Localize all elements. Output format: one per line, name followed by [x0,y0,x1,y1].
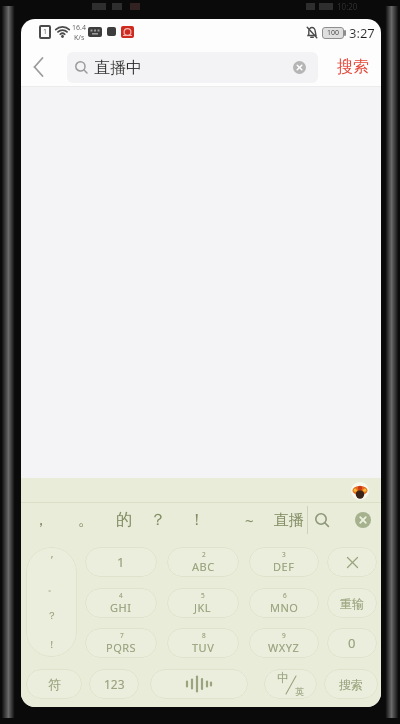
button[interactable] [327,547,377,577]
button[interactable]: 的 [108,508,140,532]
staticText: 直播中 [94,58,142,78]
staticText: 的 [116,510,132,530]
button[interactable]: 5 [167,588,239,618]
staticText: 直播 [274,511,304,530]
staticText: ？ [150,510,166,530]
staticText: 123 [104,676,125,692]
staticText: ！ [47,638,57,651]
staticText: 9 [282,631,286,640]
staticText: 英 [295,686,304,697]
staticText: 7 [120,631,124,640]
button[interactable] [311,509,333,531]
button[interactable]: 6 [249,588,319,618]
staticText: ’ [51,553,53,567]
button[interactable]: 3 [249,547,319,577]
button[interactable]: 搜索 [331,52,375,82]
button[interactable]: 直播中 [67,52,318,83]
button[interactable]: 符 [26,669,82,699]
staticText: 搜索 [337,57,369,77]
staticText: 2 [202,550,206,559]
staticText: 0 [348,634,356,652]
button[interactable]: 8 [167,628,239,658]
staticText: JKL [194,600,212,615]
button[interactable]: 中 [264,669,317,699]
staticText: TUV [192,640,215,655]
staticText: ABC [192,559,215,574]
button[interactable]: 1 [85,547,157,577]
staticText: 。 [78,510,94,530]
staticText: ， [33,510,49,530]
button[interactable] [150,669,248,699]
staticText: 3 [282,550,286,559]
button[interactable]: 0 [327,628,377,658]
staticText: GHI [110,600,132,615]
button[interactable] [355,512,371,528]
staticText: 4 [119,591,123,600]
staticText: 3:27 [349,24,375,42]
button[interactable]: 9 [249,628,319,658]
staticText: 6 [283,591,287,600]
button[interactable] [27,52,51,82]
staticText: ~ [245,510,254,530]
staticText: ！ [189,510,205,530]
staticText: PQRS [106,640,137,655]
button[interactable]: 搜索 [324,669,378,699]
button[interactable]: 123 [89,669,139,699]
staticText: 5 [201,591,205,600]
button[interactable]: ， [25,508,57,532]
staticText: 符 [48,676,61,692]
button[interactable]: 7 [85,628,157,658]
staticText: 16.4 [72,23,86,33]
staticText: 8 [202,631,206,640]
button[interactable]: ？ [142,508,174,532]
button[interactable]: 重输 [327,588,377,618]
staticText: MNO [270,600,299,615]
button[interactable]: 4 [85,588,157,618]
button[interactable]: ！ [181,508,213,532]
button[interactable]: 2 [167,547,239,577]
staticText: 。 [48,583,56,593]
staticText: ？ [47,609,57,622]
button[interactable]: 直播 [274,508,307,532]
staticText: WXYZ [268,640,300,655]
staticText: 1 [43,27,48,37]
staticText: 100 [327,28,340,38]
staticText: 10:20 [337,1,358,12]
button[interactable]: ~ [233,508,265,532]
staticText: 搜索 [339,677,363,692]
staticText: K/s [74,33,85,43]
button[interactable] [293,61,306,74]
staticText: DEF [273,559,295,574]
staticText: 1 [117,553,125,571]
staticText: 重输 [340,596,364,611]
button[interactable]: ’ [26,547,77,657]
staticText: 中 [277,670,289,685]
button[interactable]: 。 [70,508,102,532]
